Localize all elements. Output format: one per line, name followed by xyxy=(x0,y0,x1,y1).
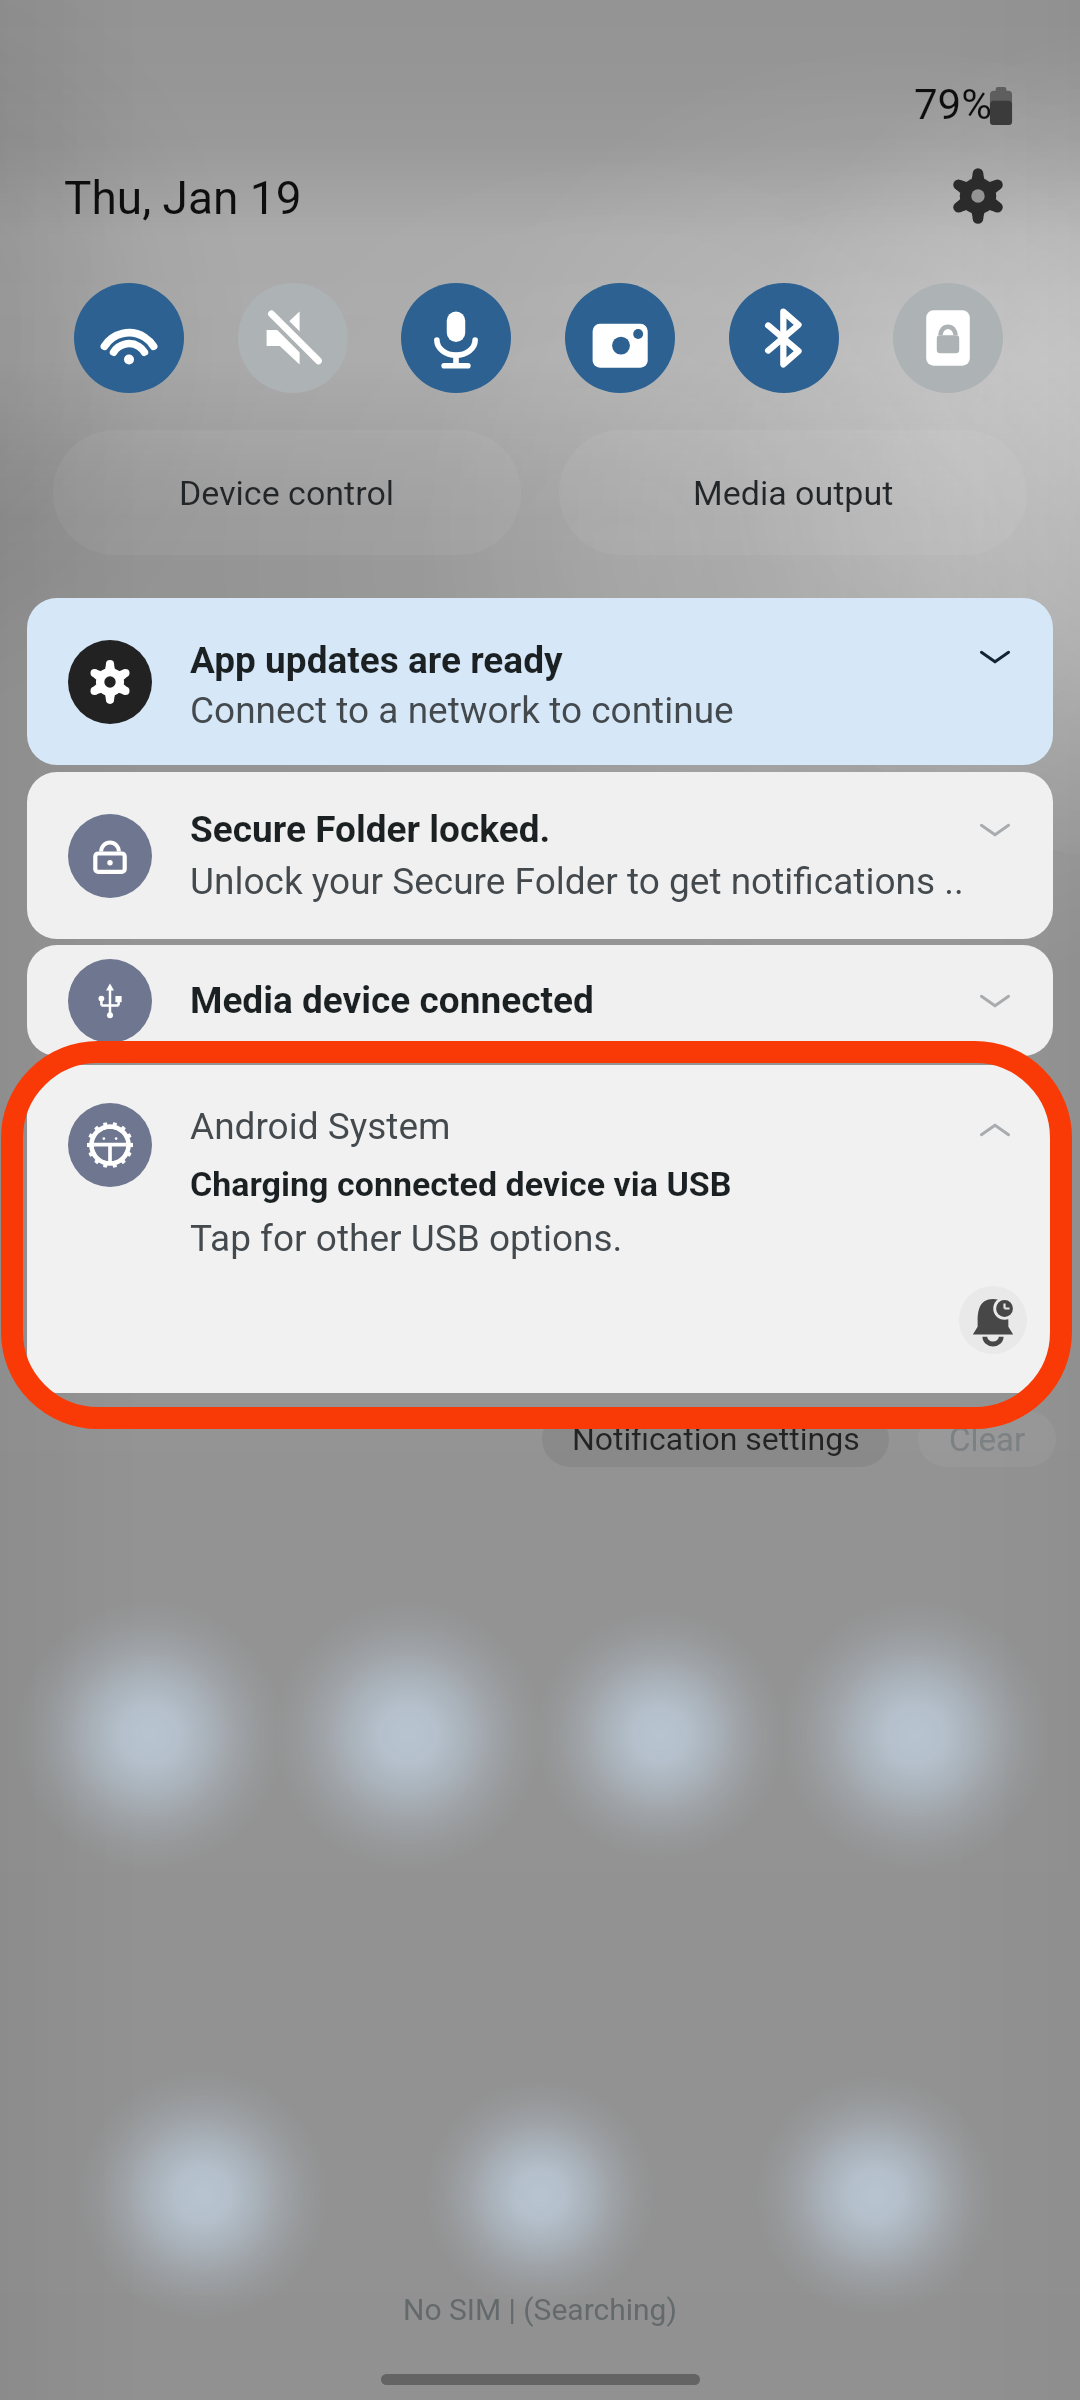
button[interactable]: Expand xyxy=(964,799,1026,861)
staticText: Android System xyxy=(190,1105,451,1148)
button[interactable]: Sound off xyxy=(238,283,348,393)
staticText: Charging connected device via USB xyxy=(190,1164,732,1204)
button[interactable]: Secure Folder locked. xyxy=(27,772,1053,939)
staticText: Unlock your Secure Folder to get notific… xyxy=(190,860,964,903)
staticText: App updates are ready xyxy=(190,639,563,682)
button[interactable]: App updates are ready xyxy=(27,598,1053,765)
staticText: Device control xyxy=(179,473,395,513)
button[interactable]: Camera xyxy=(565,283,675,393)
button[interactable]: Bluetooth xyxy=(729,283,839,393)
staticText: Media device connected xyxy=(190,979,594,1022)
button[interactable]: Expand xyxy=(964,626,1026,688)
staticText: No SIM | (Searching) xyxy=(403,2292,677,2327)
staticText: 79% xyxy=(914,80,992,129)
button[interactable]: Android System xyxy=(27,1065,1053,1393)
staticText: Thu, Jan 19 xyxy=(64,171,302,225)
button[interactable]: Notification settings xyxy=(542,1411,889,1467)
staticText: Secure Folder locked. xyxy=(190,808,551,851)
button[interactable]: Media output xyxy=(559,430,1027,555)
button[interactable]: Wi-Fi xyxy=(74,283,184,393)
button[interactable]: Clear xyxy=(918,1411,1056,1467)
button[interactable]: Device control xyxy=(53,430,521,555)
button[interactable]: Collapse xyxy=(964,1099,1026,1161)
staticText: Notification settings xyxy=(572,1420,860,1458)
staticText: Connect to a network to continue xyxy=(190,689,734,732)
button[interactable]: Secure Folder xyxy=(893,283,1003,393)
staticText: Clear xyxy=(949,1420,1026,1459)
button[interactable]: Expand xyxy=(964,970,1026,1032)
button[interactable]: Snooze notification xyxy=(959,1286,1027,1354)
button[interactable]: Settings xyxy=(942,160,1014,232)
button[interactable]: Microphone xyxy=(401,283,511,393)
staticText: Media output xyxy=(693,473,894,513)
staticText: Tap for other USB options. xyxy=(190,1217,623,1260)
button[interactable]: Media device connected xyxy=(27,945,1053,1056)
